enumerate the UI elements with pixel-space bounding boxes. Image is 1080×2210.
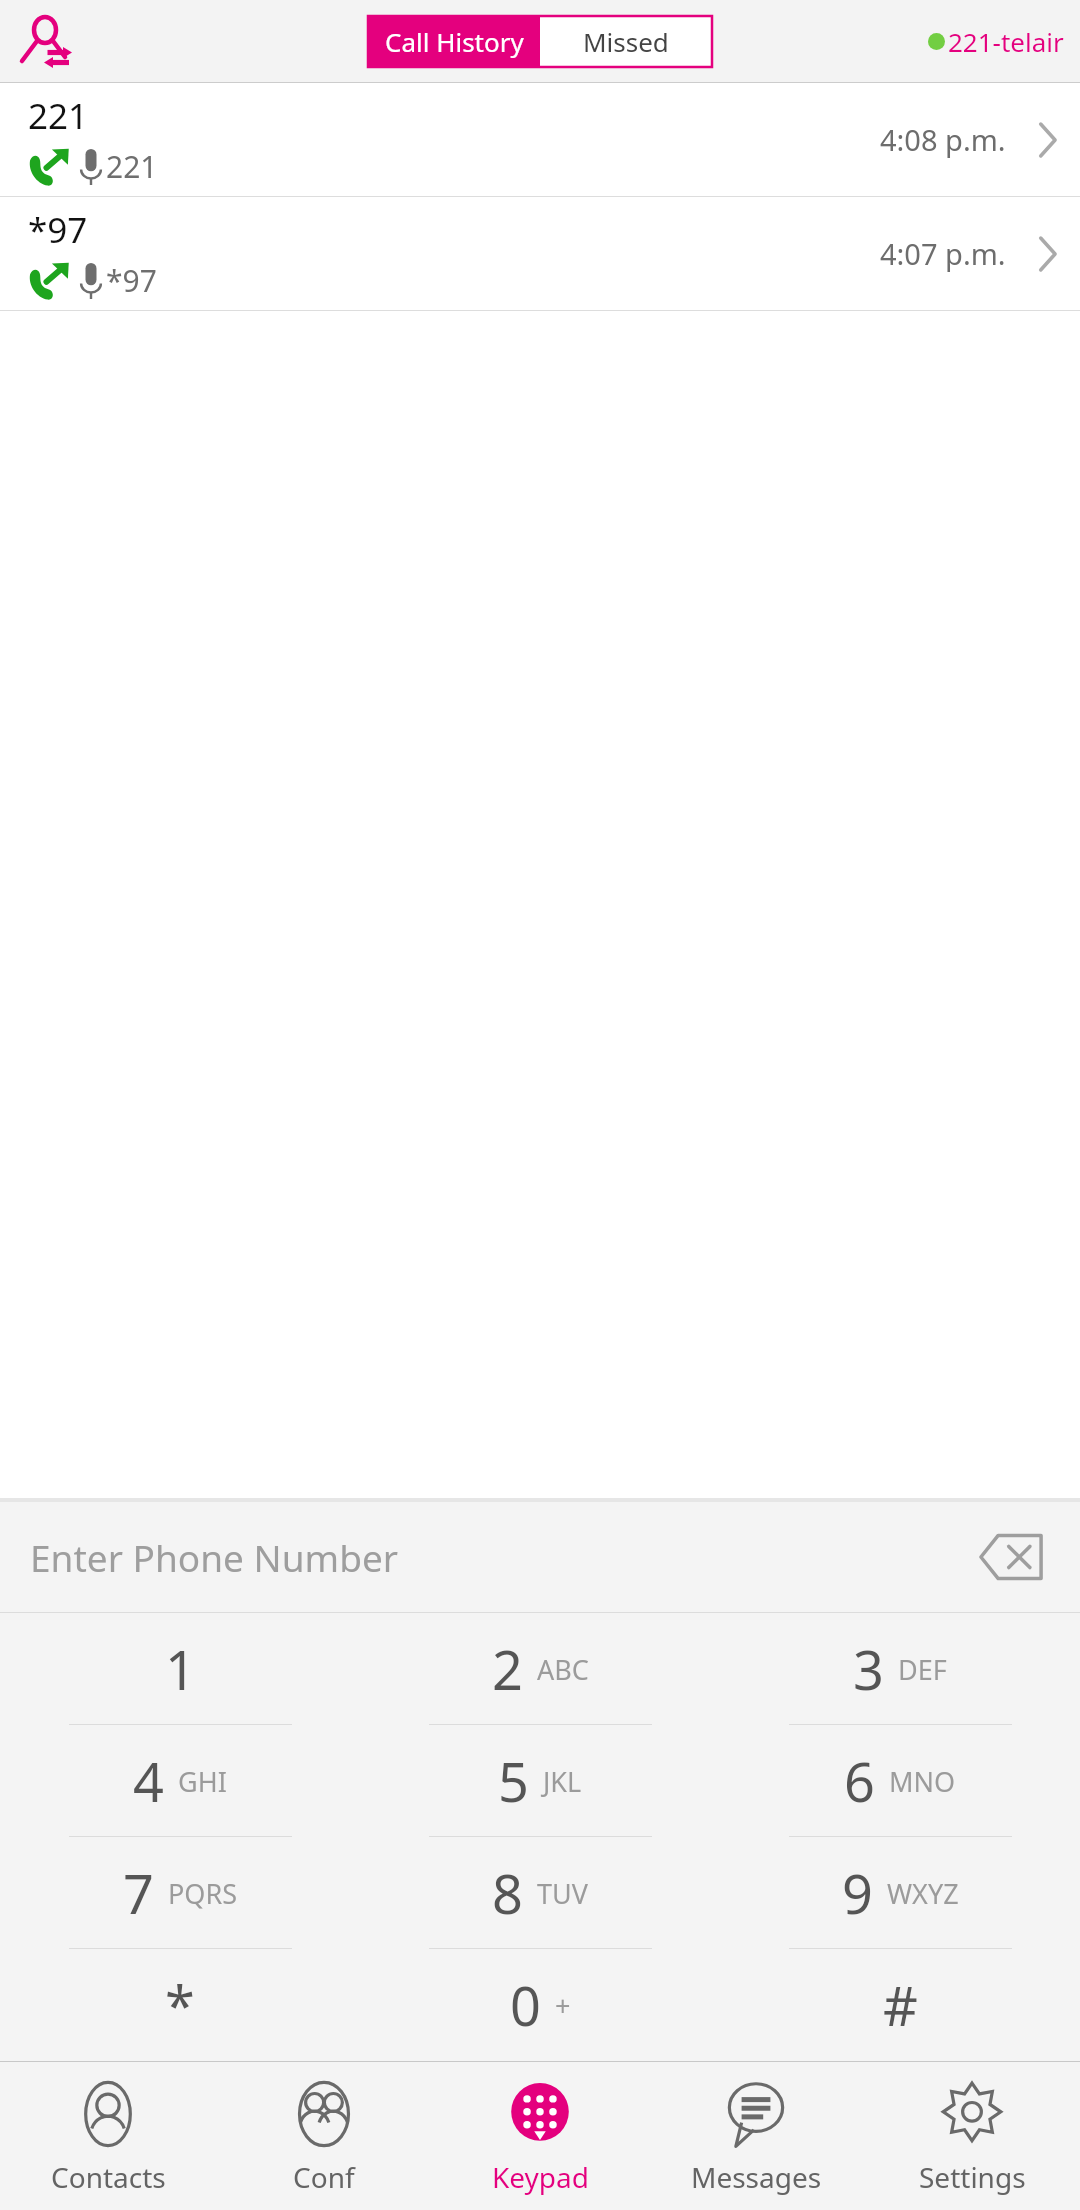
staticText: 5 — [498, 1744, 529, 1818]
staticText: 8 — [492, 1856, 523, 1930]
button[interactable]: Conf — [216, 2062, 432, 2210]
staticText: *97 — [28, 206, 88, 254]
staticText: PQRS — [168, 1875, 238, 1912]
staticText: Enter Phone Number — [30, 1532, 972, 1582]
button[interactable]: Backspace — [972, 1529, 1050, 1585]
staticText: 1 — [165, 1632, 196, 1706]
staticText: 2 — [492, 1632, 523, 1706]
staticText: GHI — [178, 1763, 227, 1800]
staticText: JKL — [543, 1763, 582, 1800]
button[interactable]: Contacts — [0, 2062, 216, 2210]
button[interactable]: # — [720, 1949, 1080, 2061]
button[interactable]: 5 — [360, 1725, 720, 1837]
staticText: 221 — [28, 92, 89, 140]
staticText: 4:08 p.m. — [880, 120, 1006, 159]
staticText: ABC — [537, 1651, 589, 1688]
button[interactable]: 2 — [360, 1613, 720, 1725]
button[interactable]: Call History — [368, 16, 540, 67]
staticText: TUV — [537, 1875, 588, 1912]
button[interactable]: Enter Phone Number — [30, 1502, 1050, 1612]
button[interactable]: Messages — [648, 2062, 864, 2210]
staticText: 9 — [842, 1856, 873, 1930]
staticText: 7 — [123, 1856, 154, 1930]
staticText: 3 — [853, 1632, 884, 1706]
button[interactable]: 0 — [360, 1949, 720, 2061]
button[interactable]: Transfer call — [10, 6, 80, 76]
staticText: 221-telair — [948, 24, 1064, 59]
staticText: Missed — [583, 24, 669, 59]
staticText: Conf — [293, 2158, 355, 2196]
staticText: Messages — [691, 2158, 822, 2196]
button[interactable]: 7 — [0, 1837, 360, 1949]
staticText: 0 — [510, 1968, 541, 2042]
button[interactable]: 221-telair — [928, 24, 1064, 59]
button[interactable]: Keypad — [432, 2062, 648, 2210]
button[interactable]: * — [0, 1949, 360, 2061]
staticText: 221 — [106, 146, 158, 187]
staticText: 4:07 p.m. — [880, 234, 1006, 273]
button[interactable]: 6 — [720, 1725, 1080, 1837]
button[interactable]: *97 — [0, 197, 1080, 311]
button[interactable]: Settings — [864, 2062, 1080, 2210]
staticText: 6 — [844, 1744, 875, 1818]
staticText: Call History — [385, 24, 524, 59]
button[interactable]: 1 — [0, 1613, 360, 1725]
staticText: WXYZ — [887, 1875, 959, 1912]
button[interactable]: Missed — [540, 16, 712, 67]
staticText: # — [883, 1968, 918, 2042]
staticText: MNO — [889, 1763, 956, 1800]
staticText: * — [165, 1968, 195, 2042]
staticText: 4 — [133, 1744, 164, 1818]
staticText: Keypad — [492, 2158, 589, 2196]
button[interactable]: 221 — [0, 83, 1080, 197]
button[interactable]: 8 — [360, 1837, 720, 1949]
button[interactable]: 4 — [0, 1725, 360, 1837]
staticText: Contacts — [51, 2158, 166, 2196]
button[interactable]: 3 — [720, 1613, 1080, 1725]
staticText: *97 — [106, 260, 157, 301]
staticText: DEF — [898, 1651, 947, 1688]
button[interactable]: 9 — [720, 1837, 1080, 1949]
staticText: + — [555, 1987, 571, 2024]
staticText: Settings — [919, 2158, 1026, 2196]
